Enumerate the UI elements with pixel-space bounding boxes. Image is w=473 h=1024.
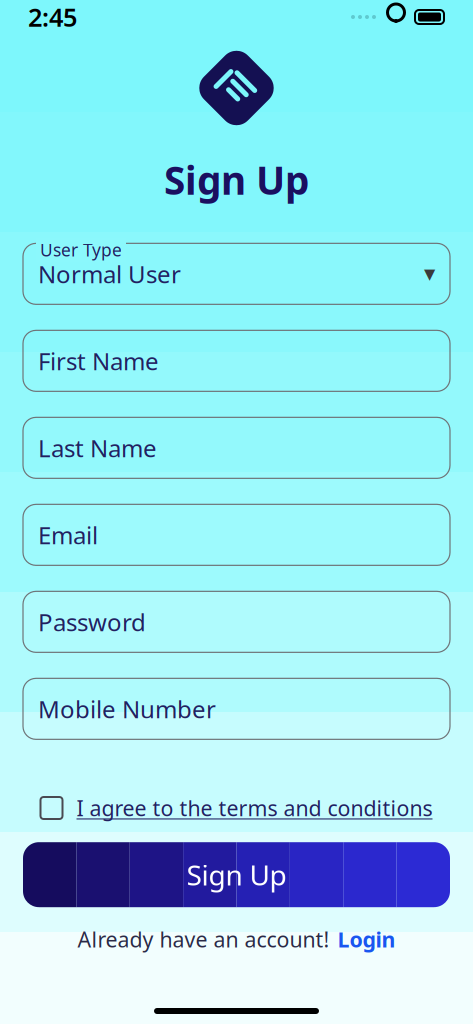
staticText: Password (38, 606, 146, 638)
staticText: Already have an account! (77, 925, 329, 953)
staticText: I agree to the terms and conditions (76, 794, 432, 822)
button[interactable]: Login (337, 925, 395, 953)
button[interactable]: Normal User (23, 243, 450, 304)
staticText: 2:45 (28, 0, 77, 34)
button[interactable]: Mobile Number (23, 678, 450, 739)
staticText: Email (38, 519, 98, 551)
staticText: User Type (40, 238, 122, 261)
staticText: Sign Up (186, 856, 286, 893)
button[interactable]: Sign Up (23, 842, 450, 907)
button[interactable]: First Name (23, 330, 450, 391)
button[interactable]: Last Name (23, 417, 450, 478)
staticText: Sign Up (164, 154, 309, 205)
button[interactable]: I agree to the terms and conditions (40, 794, 432, 822)
button[interactable]: Email (23, 504, 450, 565)
staticText: Mobile Number (38, 693, 216, 725)
staticText: Last Name (38, 432, 157, 464)
button[interactable]: Password (23, 591, 450, 652)
staticText: Normal User (38, 258, 181, 290)
staticText: ▼ (424, 265, 435, 282)
staticText: First Name (38, 345, 159, 377)
staticText: Login (337, 925, 395, 953)
